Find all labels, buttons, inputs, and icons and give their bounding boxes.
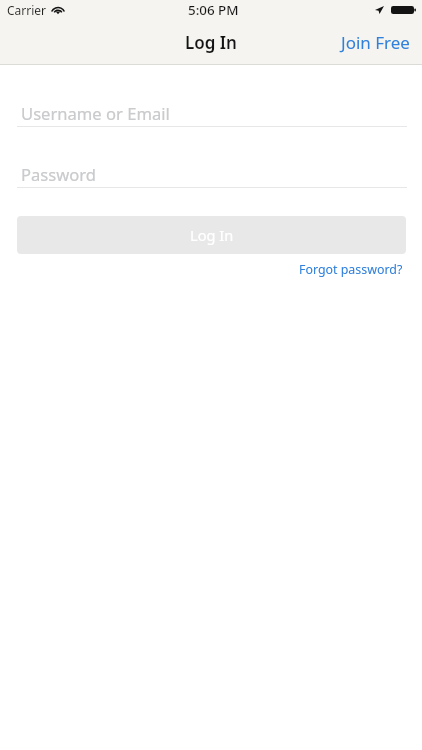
staticText: Log In — [190, 225, 234, 245]
other: Wi-Fi — [51, 6, 65, 14]
staticText: Carrier — [7, 2, 47, 18]
button[interactable]: Join Free — [329, 20, 422, 64]
other: Location — [375, 6, 384, 14]
staticText: Log In — [185, 31, 237, 54]
staticText: Username or Email — [21, 102, 170, 125]
staticText: Password — [21, 163, 97, 186]
other: Battery — [391, 6, 416, 14]
button[interactable]: Forgot password? — [289, 258, 422, 280]
staticText: Forgot password? — [299, 261, 403, 277]
button[interactable]: Password — [0, 160, 422, 188]
staticText: 5:06 PM — [188, 1, 239, 19]
staticText: Join Free — [341, 31, 410, 54]
button[interactable]: Username or Email — [0, 99, 422, 127]
